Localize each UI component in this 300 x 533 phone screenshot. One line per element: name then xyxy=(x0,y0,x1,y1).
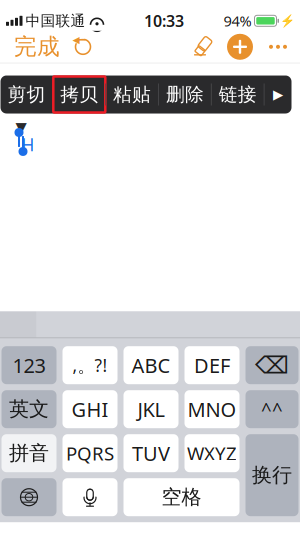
staticText: 换行 xyxy=(252,463,292,487)
staticText: 拷贝 xyxy=(60,83,98,106)
staticText: ⌫ xyxy=(255,352,289,379)
button[interactable]: Delete xyxy=(245,346,298,384)
staticText: 10:33 xyxy=(144,10,184,31)
staticText: 完成 xyxy=(14,33,60,61)
staticText: ABC xyxy=(131,352,170,378)
button[interactable]: 换行 xyxy=(245,434,298,516)
button[interactable]: 英文 xyxy=(1,390,56,428)
button[interactable]: 链接 xyxy=(212,76,264,112)
button[interactable]: More actions xyxy=(264,76,291,112)
button[interactable]: PQRS xyxy=(62,434,117,472)
staticText: 剪切 xyxy=(7,83,45,106)
staticText: TUV xyxy=(132,440,170,466)
staticText: 英文 xyxy=(9,397,49,421)
staticText: ▼ xyxy=(15,119,26,136)
staticText: 拼音 xyxy=(9,441,49,465)
staticText: MNO xyxy=(187,396,236,422)
staticText: ,。?! xyxy=(72,354,107,377)
button[interactable]: 空格 xyxy=(123,478,239,516)
staticText: 链接 xyxy=(219,83,257,106)
staticText: GHI xyxy=(71,396,108,422)
button[interactable]: JKL xyxy=(123,390,178,428)
button[interactable]: ,。?! xyxy=(62,346,117,384)
staticText: ^^ xyxy=(261,397,283,422)
staticText: 粘贴 xyxy=(113,83,151,106)
button[interactable]: 删除 xyxy=(159,76,211,112)
button[interactable]: MNO xyxy=(184,390,239,428)
button[interactable]: Undo xyxy=(68,31,98,63)
staticText: WXYZ xyxy=(187,441,237,466)
button[interactable]: GHI xyxy=(62,390,117,428)
button[interactable]: DEF xyxy=(184,346,239,384)
button[interactable]: More xyxy=(260,30,296,64)
button[interactable]: Add xyxy=(220,29,260,65)
staticText: 123 xyxy=(12,352,45,378)
staticText: 空格 xyxy=(161,485,201,509)
button[interactable]: 拷贝 xyxy=(53,76,105,112)
button[interactable]: 完成 xyxy=(6,31,68,63)
staticText: PQRS xyxy=(66,441,114,466)
staticText: JKL xyxy=(137,396,164,422)
button[interactable]: WXYZ xyxy=(184,434,239,472)
button[interactable]: 剪切 xyxy=(0,76,52,112)
button[interactable]: ^^ xyxy=(245,390,298,428)
staticText: ⚡ xyxy=(280,14,295,28)
staticText: H xyxy=(21,133,34,156)
button[interactable]: 拼音 xyxy=(1,434,56,472)
button[interactable]: Dictation xyxy=(62,478,117,516)
staticText: 中国联通 xyxy=(25,12,85,30)
staticText: DEF xyxy=(194,352,230,378)
button[interactable]: 粘贴 xyxy=(106,76,158,112)
button[interactable]: TUV xyxy=(123,434,178,472)
staticText: ▶ xyxy=(273,87,283,102)
button[interactable]: Highlighter xyxy=(186,30,220,64)
button[interactable]: Switch keyboard xyxy=(1,478,56,516)
button[interactable]: ABC xyxy=(123,346,178,384)
button[interactable]: 123 xyxy=(1,346,56,384)
staticText: 94% xyxy=(223,11,251,31)
staticText: ◀ xyxy=(72,34,79,45)
staticText: 删除 xyxy=(166,83,204,106)
